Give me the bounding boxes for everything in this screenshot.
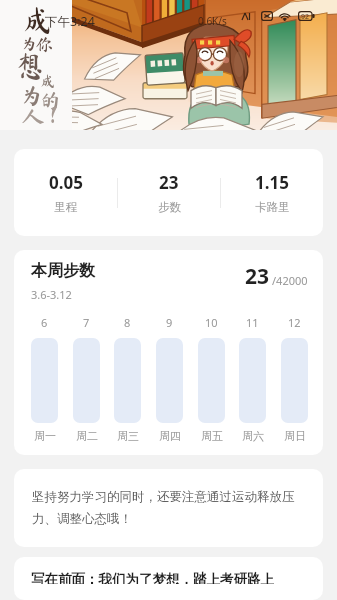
staticText: 92 [301, 12, 310, 22]
button[interactable]: 本周步数 [14, 250, 323, 455]
staticText: 的 [40, 90, 60, 110]
staticText: 7 [83, 315, 90, 330]
staticText: 周四 [159, 429, 181, 443]
staticText: 10 [205, 315, 218, 330]
button[interactable]: 0.05 [14, 171, 117, 214]
staticText: 12 [288, 315, 301, 330]
staticText: 里程 [54, 200, 77, 214]
staticText: 0.6K/s [198, 14, 227, 28]
staticText: 0.05 [49, 171, 83, 194]
staticText: 周三 [117, 429, 139, 443]
staticText: 周一 [34, 429, 56, 443]
staticText: 成 [40, 74, 56, 89]
staticText: 本周步数 [31, 261, 95, 281]
button[interactable]: 写在前面：我们为了梦想，踏上考研路上 [14, 557, 323, 600]
button[interactable]: 1.15 [221, 171, 323, 214]
staticText: 写在前面：我们为了梦想，踏上考研路上 [31, 571, 274, 584]
staticText: 周五 [201, 429, 223, 443]
button[interactable]: 坚持努力学习的同时，还要注意通过运动释放压力、调整心态哦！ [14, 469, 323, 547]
staticText: 23 [159, 171, 179, 194]
staticText: 23 [245, 262, 270, 291]
staticText: 周日 [284, 429, 306, 443]
staticText: 8 [124, 315, 131, 330]
staticText: 人 [21, 104, 45, 128]
staticText: 周二 [76, 429, 98, 443]
staticText: 步数 [158, 200, 181, 214]
staticText: 11 [246, 315, 259, 330]
staticText: 3.6-3.12 [31, 287, 72, 302]
staticText: 卡路里 [255, 200, 290, 214]
staticText: 坚持努力学习的同时，还要注意通过运动释放压力、调整心态哦！ [32, 489, 307, 527]
staticText: 你 [35, 35, 53, 53]
staticText: 想 [15, 51, 45, 81]
staticText: 为 [20, 84, 43, 107]
staticText: 9 [166, 315, 173, 330]
staticText: 为 [21, 36, 38, 52]
button[interactable]: 23 [118, 171, 220, 214]
staticText: 下午3:24 [45, 13, 95, 30]
staticText: 1.15 [255, 171, 289, 194]
staticText: /42000 [272, 273, 308, 288]
staticText: 周六 [242, 429, 264, 443]
staticText: ！ [42, 103, 66, 127]
staticText: 6 [41, 315, 48, 330]
staticText: 成 [22, 5, 52, 35]
